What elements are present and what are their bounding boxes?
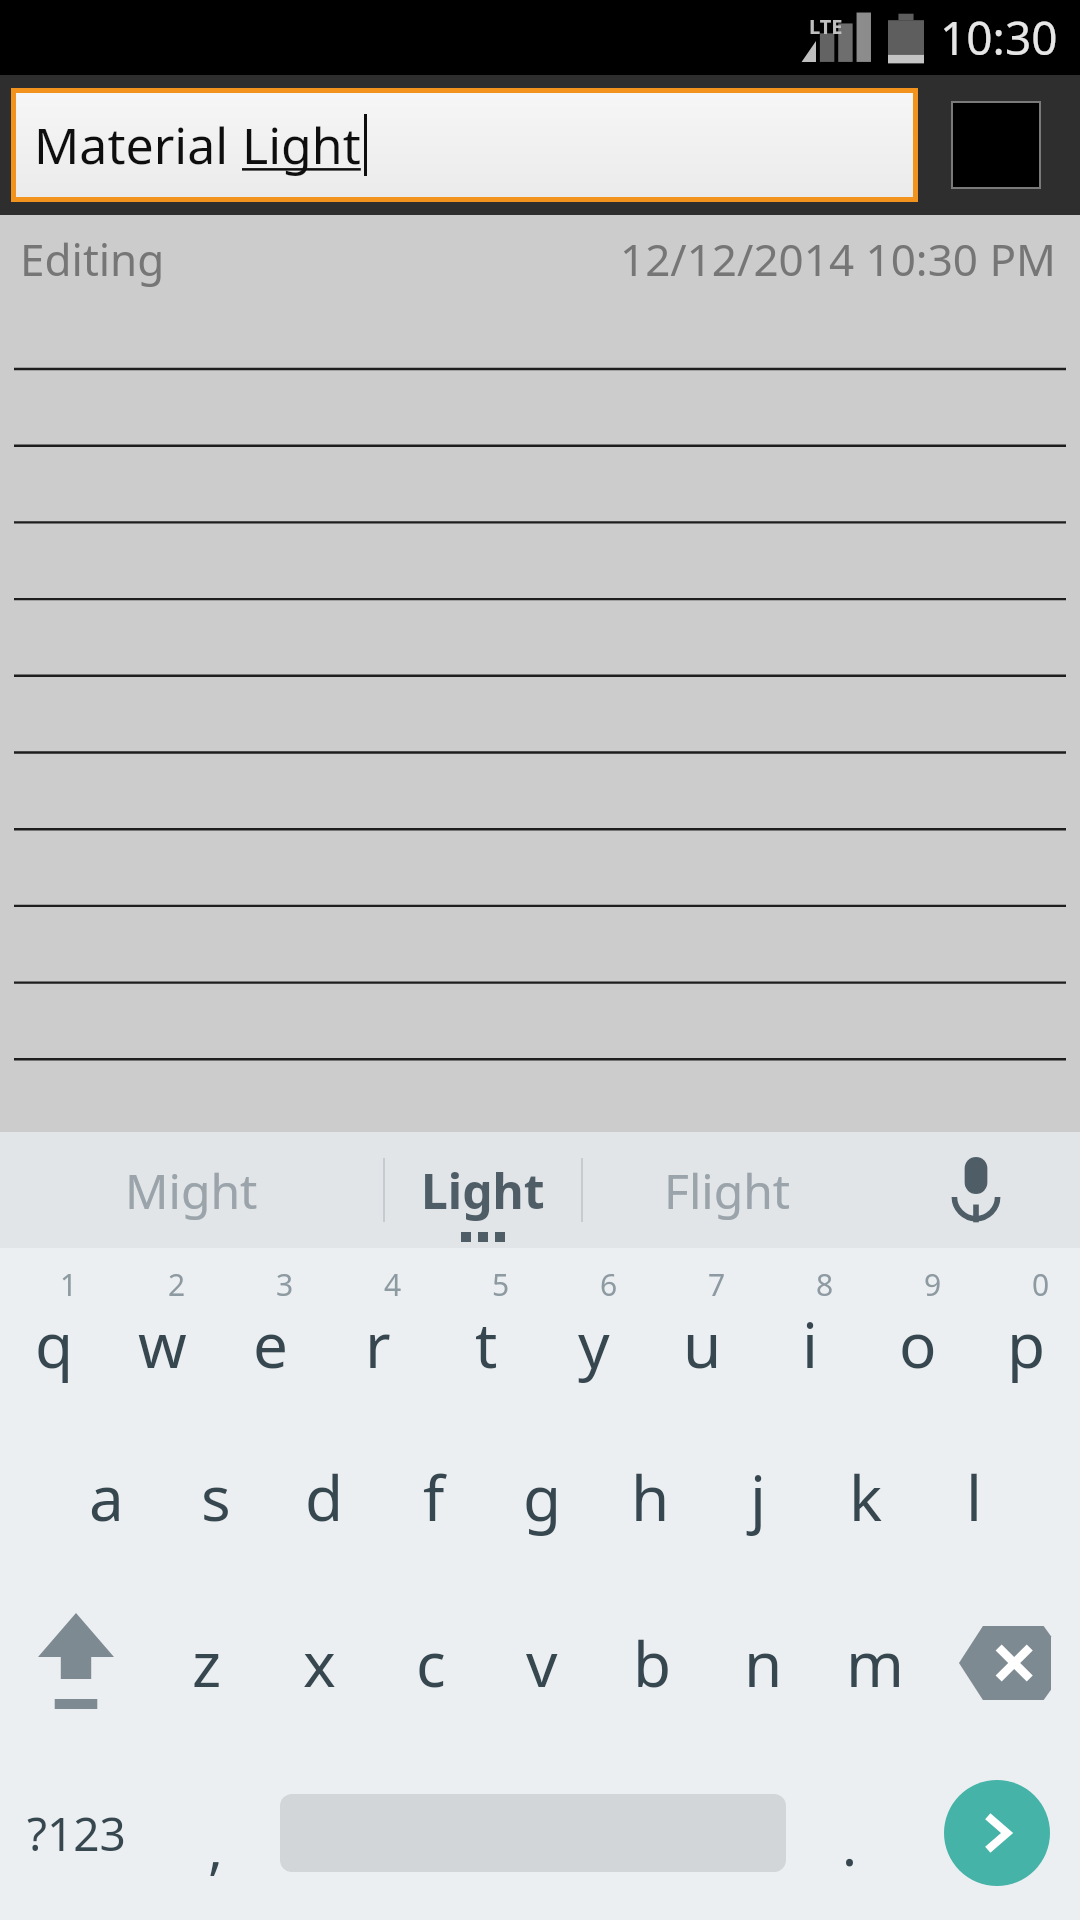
staticText: f bbox=[423, 1455, 445, 1539]
staticText: Might bbox=[125, 1158, 258, 1223]
button[interactable]: n bbox=[708, 1580, 819, 1746]
button[interactable]: c bbox=[375, 1580, 486, 1746]
staticText: 4 bbox=[384, 1264, 402, 1305]
staticText: 5 bbox=[492, 1264, 510, 1305]
staticText: r bbox=[365, 1302, 391, 1386]
staticText: 2 bbox=[168, 1264, 186, 1305]
staticText: b bbox=[633, 1621, 672, 1705]
button[interactable]: s bbox=[161, 1414, 270, 1580]
staticText: n bbox=[744, 1621, 783, 1705]
staticText: 7 bbox=[708, 1264, 726, 1305]
button[interactable]: Editing bbox=[0, 215, 1080, 1132]
button[interactable]: Flight bbox=[583, 1132, 871, 1248]
button[interactable]: x bbox=[263, 1580, 375, 1746]
button[interactable]: Might bbox=[0, 1132, 383, 1248]
staticText: w bbox=[138, 1302, 187, 1386]
staticText: e bbox=[253, 1302, 288, 1386]
button[interactable]: ?123 bbox=[0, 1746, 152, 1920]
staticText: z bbox=[192, 1621, 222, 1705]
staticText: Editing bbox=[20, 229, 165, 289]
staticText: x bbox=[303, 1621, 336, 1705]
button[interactable]: 0 bbox=[972, 1248, 1080, 1414]
button[interactable]: 5 bbox=[432, 1248, 540, 1414]
staticText: g bbox=[523, 1455, 562, 1539]
button[interactable]: m bbox=[819, 1580, 930, 1746]
button[interactable]: 9 bbox=[864, 1248, 972, 1414]
staticText: 8 bbox=[816, 1264, 834, 1305]
staticText: q bbox=[35, 1302, 74, 1386]
staticText: 0 bbox=[1032, 1264, 1050, 1305]
staticText: 1 bbox=[60, 1264, 78, 1305]
button[interactable]: 6 bbox=[540, 1248, 648, 1414]
button[interactable]: Material bbox=[16, 93, 913, 197]
staticText: , bbox=[208, 1809, 224, 1885]
staticText: y bbox=[578, 1302, 610, 1386]
button[interactable]: Backspace bbox=[930, 1580, 1080, 1746]
staticText: a bbox=[89, 1455, 124, 1539]
staticText: 3 bbox=[276, 1264, 294, 1305]
staticText: h bbox=[631, 1455, 670, 1539]
staticText: Light bbox=[421, 1158, 545, 1223]
staticText: j bbox=[750, 1455, 766, 1539]
staticText: i bbox=[802, 1302, 818, 1386]
button[interactable]: 4 bbox=[324, 1248, 432, 1414]
button[interactable]: b bbox=[597, 1580, 708, 1746]
button[interactable]: g bbox=[488, 1414, 596, 1580]
staticText: Light bbox=[242, 111, 361, 179]
button[interactable]: 2 bbox=[108, 1248, 216, 1414]
staticText: m bbox=[846, 1621, 904, 1705]
staticText: 9 bbox=[924, 1264, 942, 1305]
button[interactable]: 1 bbox=[0, 1248, 108, 1414]
button[interactable]: a bbox=[52, 1414, 161, 1580]
staticText: p bbox=[1007, 1302, 1046, 1386]
button[interactable]: 7 bbox=[648, 1248, 756, 1414]
button[interactable]: f bbox=[379, 1414, 488, 1580]
button[interactable]: 3 bbox=[216, 1248, 324, 1414]
staticText: c bbox=[416, 1621, 446, 1705]
button[interactable]: d bbox=[270, 1414, 379, 1580]
staticText: u bbox=[683, 1302, 722, 1386]
staticText: o bbox=[899, 1302, 937, 1386]
staticText: 6 bbox=[600, 1264, 618, 1305]
button[interactable]: l bbox=[920, 1414, 1028, 1580]
button[interactable]: Voice input bbox=[871, 1132, 1080, 1248]
staticText: s bbox=[201, 1455, 231, 1539]
button[interactable]: v bbox=[486, 1580, 597, 1746]
staticText: 12/12/2014 10:30 PM bbox=[620, 229, 1056, 289]
staticText: ?123 bbox=[27, 1802, 126, 1865]
button[interactable]: z bbox=[151, 1580, 263, 1746]
button[interactable]: h bbox=[596, 1414, 704, 1580]
staticText: Flight bbox=[664, 1158, 791, 1223]
button[interactable]: 8 bbox=[756, 1248, 864, 1414]
staticText: Material bbox=[34, 111, 242, 179]
button[interactable]: . bbox=[786, 1746, 914, 1920]
button[interactable]: Next bbox=[914, 1746, 1080, 1920]
button[interactable]: , bbox=[152, 1746, 280, 1920]
button[interactable]: j bbox=[704, 1414, 812, 1580]
button[interactable]: k bbox=[812, 1414, 920, 1580]
button[interactable]: Light bbox=[385, 1132, 581, 1248]
staticText: l bbox=[966, 1455, 982, 1539]
staticText: v bbox=[526, 1621, 558, 1705]
staticText: k bbox=[849, 1455, 883, 1539]
staticText: LTE bbox=[809, 13, 843, 40]
staticText: d bbox=[305, 1455, 344, 1539]
staticText: . bbox=[842, 1806, 858, 1882]
staticText: 10:30 bbox=[940, 6, 1058, 69]
button[interactable]: Shift bbox=[0, 1580, 151, 1746]
staticText: t bbox=[475, 1302, 498, 1386]
